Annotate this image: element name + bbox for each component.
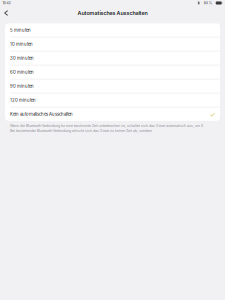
staticText: 30 minuten: [10, 55, 34, 61]
staticText: 19:43: [2, 1, 10, 5]
button[interactable]: 5 minuten: [5, 23, 220, 37]
staticText: 90 minuten: [10, 83, 34, 89]
button[interactable]: 30 minuten: [5, 51, 220, 65]
staticText: 84 %: [204, 1, 212, 5]
staticText: 10 minuten: [10, 41, 33, 47]
button[interactable]: 60 minuten: [5, 65, 220, 79]
staticText: Wenn die Bluetooth-Verbindung fur eine b…: [10, 124, 203, 128]
staticText: 60 minuten: [10, 69, 34, 75]
button[interactable]: 120 minuten: [5, 93, 220, 107]
button[interactable]: 90 minuten: [5, 79, 220, 93]
button[interactable]: 10 minuten: [5, 37, 220, 51]
button[interactable]: Back: [0, 8, 12, 18]
staticText: Automatisches Ausschalten: [77, 10, 147, 16]
staticText: 5 minuten: [10, 27, 31, 33]
staticText: Bei bestehender Bluetooth-Verbindung erl…: [10, 129, 152, 133]
button[interactable]: Kein automatisches Ausschalten: [5, 107, 220, 121]
staticText: Kein automatisches Ausschalten: [10, 111, 73, 117]
staticText: 120 minuten: [10, 97, 36, 103]
